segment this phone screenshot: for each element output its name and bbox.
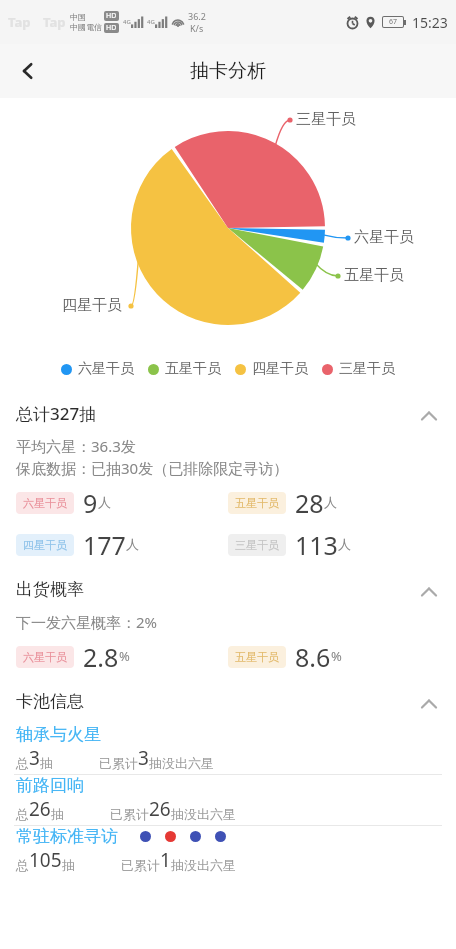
staticText: HD [106,11,117,21]
staticText: 26 [149,796,171,822]
staticText: 人 [98,494,111,510]
button[interactable]: Back [0,44,56,98]
staticText: 中國電信 [70,22,102,32]
staticText: Tap [43,13,66,31]
staticText: 抽 [40,755,53,771]
staticText: 五星干员 [235,496,279,510]
staticText: 保底数据：已抽30发（已排除限定寻访） [16,458,289,478]
button[interactable]: 卡池信息 [0,678,456,724]
other: Collapse section [418,690,440,712]
staticText: 四星干员 [23,538,67,552]
staticText: 已累计 [110,806,149,822]
staticText: 六星干员 [23,496,67,510]
staticText: 人 [126,536,139,552]
staticText: 三星干员 [339,360,395,378]
staticText: 抽 [51,806,64,822]
staticText: 177 [83,528,126,562]
staticText: 113 [295,528,338,562]
staticText: 总 [16,755,29,771]
staticText: 五星干员 [235,650,279,664]
staticText: 四星干员 [252,360,308,378]
button[interactable]: 轴承与火星 [0,724,456,775]
button[interactable]: 总计327抽 [0,390,456,436]
staticText: 总 [16,806,29,822]
staticText: 抽 [62,857,75,873]
staticText: 抽卡分析 [190,59,266,83]
staticText: 67 [389,17,398,27]
staticText: 1 [160,847,171,873]
staticText: 三星干员 [296,110,356,129]
staticText: 轴承与火星 [16,724,101,745]
staticText: 六星干员 [354,228,414,247]
staticText: 人 [338,536,351,552]
staticText: 卡池信息 [16,691,84,712]
staticText: % [119,647,130,665]
staticText: 36.2 [188,10,206,22]
staticText: 已累计 [121,857,160,873]
staticText: 人 [324,494,337,510]
staticText: 28 [295,486,324,520]
staticText: 105 [29,847,62,873]
staticText: 15:23 [412,13,448,32]
staticText: 平均六星：36.3发 [16,436,136,456]
staticText: 六星干员 [78,360,134,378]
staticText: K/s [190,22,204,34]
staticText: 五星干员 [344,266,404,285]
other: Collapse section [418,578,440,600]
staticText: 总 [16,857,29,873]
staticText: 已累计 [99,755,138,771]
button[interactable]: 出货概率 [0,566,456,612]
staticText: 2.8 [83,640,119,674]
staticText: HD [106,23,117,33]
staticText: 中国 [70,12,86,22]
staticText: 五星干员 [165,360,221,378]
other: Collapse section [418,402,440,424]
staticText: 总计327抽 [16,402,97,425]
staticText: 常驻标准寻访 [16,826,118,847]
staticText: 出货概率 [16,579,84,600]
staticText: 9 [83,486,98,520]
staticText: 四星干员 [62,296,122,315]
staticText: 前路回响 [16,775,84,796]
staticText: % [331,647,342,665]
staticText: 抽没出六星 [171,806,236,822]
staticText: 抽没出六星 [171,857,236,873]
button[interactable]: 常驻标准寻访 [0,826,456,873]
button[interactable]: 前路回响 [0,775,456,826]
staticText: 3 [138,745,149,771]
staticText: 4G [123,18,131,26]
staticText: 六星干员 [23,650,67,664]
staticText: 4G [147,18,155,26]
staticText: 下一发六星概率：2% [16,612,158,632]
staticText: 8.6 [295,640,331,674]
staticText: Tap [8,13,31,31]
staticText: 26 [29,796,51,822]
staticText: 抽没出六星 [149,755,214,771]
staticText: 3 [29,745,40,771]
staticText: 三星干员 [235,538,279,552]
